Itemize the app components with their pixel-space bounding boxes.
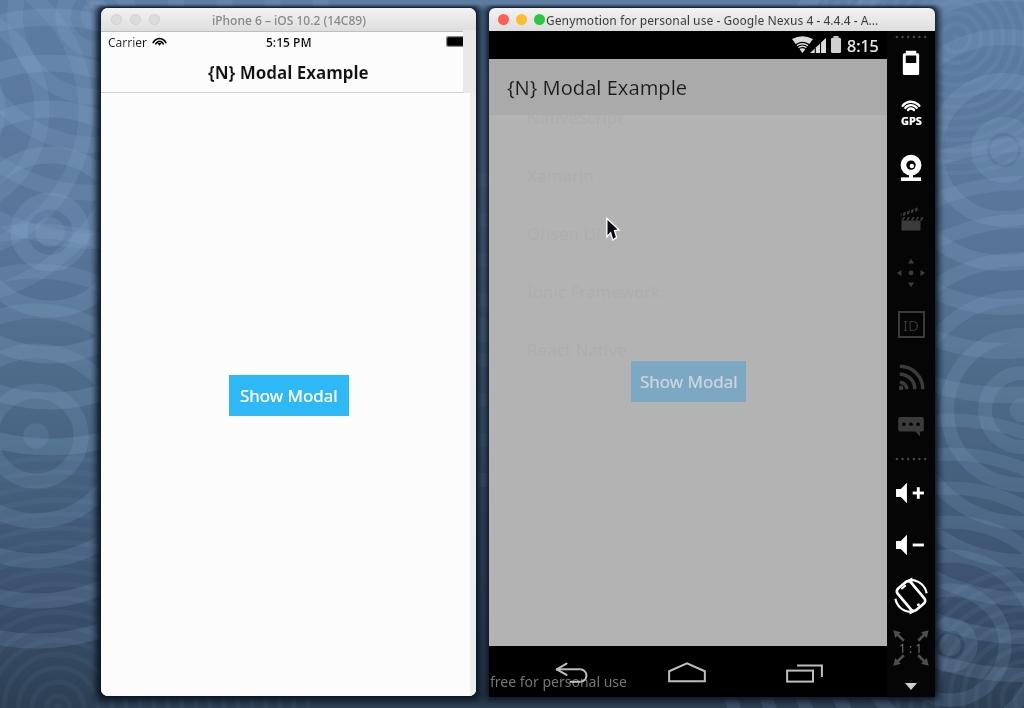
staticText: Genymotion for personal use - Google Nex… [546,12,879,28]
staticText: 8:15 [847,35,879,57]
button[interactable]: Volume down [887,521,935,569]
staticText: Carrier [108,34,148,50]
staticText: free for personal use [490,672,627,691]
staticText: Show Modal [240,384,338,407]
staticText: 1 : 1 [899,640,923,656]
staticText: {N} Modal Example [507,74,688,101]
button[interactable]: Home [662,647,712,697]
button[interactable]: Identifiers [887,300,935,348]
button[interactable]: GPS [887,89,935,137]
button[interactable]: Scale one to one [887,624,935,672]
button[interactable]: NativeScript [489,88,887,146]
staticText: ID [903,315,920,335]
staticText: 5:15 PM [266,34,312,50]
button[interactable]: Volume up [887,469,935,517]
button[interactable]: Recent apps [779,648,829,698]
button[interactable]: Camera [887,144,935,192]
button[interactable]: More options [887,662,935,708]
staticText: iPhone 6 – iOS 10.2 (14C89) [212,12,366,28]
button[interactable]: Rotate [887,572,935,620]
button[interactable]: Network [887,354,935,402]
staticText: GPS [901,113,922,128]
button[interactable]: Show Modal [229,375,349,416]
button[interactable]: Video [887,196,935,244]
button[interactable]: React Native [489,320,887,378]
staticText: Show Modal [640,370,738,393]
button[interactable]: Messages [887,401,935,449]
button[interactable]: Battery [887,39,935,87]
staticText: NativeScript [527,106,624,129]
button[interactable]: Onsen UI [489,204,887,262]
button[interactable]: Move pad [887,249,935,297]
button[interactable]: Show Modal [631,361,746,402]
staticText: {N} Modal Example [208,61,369,84]
button[interactable]: Back [547,647,597,697]
